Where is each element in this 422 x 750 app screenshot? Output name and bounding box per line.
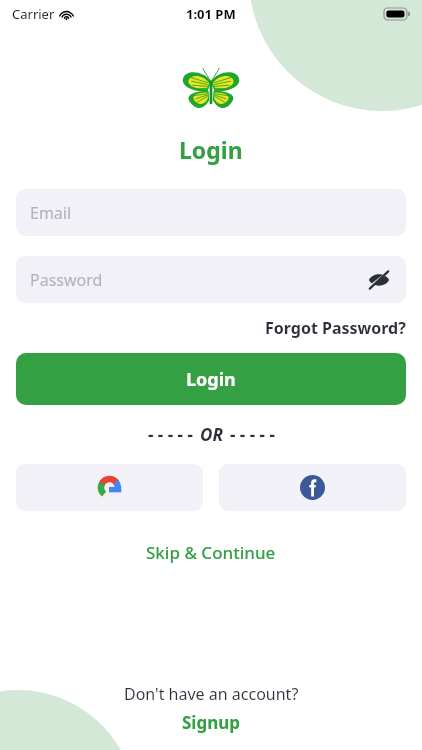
staticText: 1:01 PM [186,5,236,23]
staticText: - - - - - [230,423,275,446]
button[interactable]: Sign in with Google [16,464,203,511]
staticText: Skip & Continue [146,541,276,564]
staticText: Email [30,202,72,224]
staticText: - - - - - [148,423,193,446]
button[interactable]: Login [16,353,406,405]
button[interactable]: Email [16,189,406,236]
button[interactable]: Password [16,256,406,303]
button[interactable]: Sign in with Facebook [219,464,406,511]
staticText: Login [179,134,243,165]
staticText: Don't have an account? [124,683,299,705]
button[interactable]: Forgot Password? [265,317,406,339]
button[interactable]: Show password [362,263,396,297]
staticText: Login [186,367,236,392]
staticText: Carrier [12,5,55,23]
staticText: Forgot Password? [265,317,406,339]
staticText: Signup [182,711,241,734]
button[interactable]: Skip & Continue [138,537,284,568]
staticText: OR [200,423,223,446]
staticText: Password [30,269,103,291]
button[interactable]: Signup [174,711,249,734]
